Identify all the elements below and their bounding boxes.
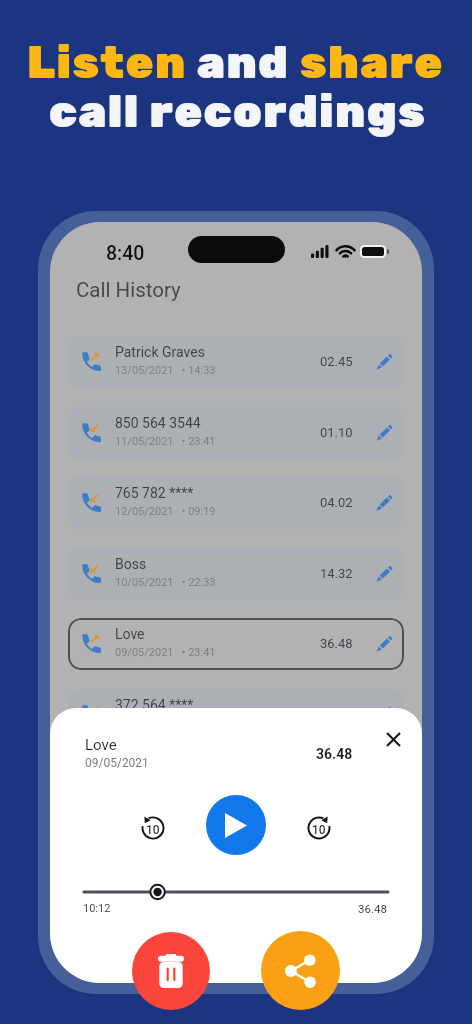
staticText: 10:12 xyxy=(83,902,111,915)
staticText: 11/05/2021 • 23:41 xyxy=(115,435,216,448)
staticText: call recordings xyxy=(49,85,427,138)
button[interactable]: 372 564 **** xyxy=(68,689,404,741)
button[interactable]: 765 782 **** xyxy=(68,477,404,529)
button[interactable]: 850 564 3544 xyxy=(68,407,404,459)
staticText: 8:40 xyxy=(106,242,145,265)
staticText: 09/05/2021 • 23:41 xyxy=(115,646,216,659)
staticText: 12/05/2021 • 09:19 xyxy=(115,505,216,518)
button[interactable]: Boss xyxy=(68,548,404,600)
button[interactable]: Share xyxy=(261,931,340,1010)
staticText: 36.48 xyxy=(320,636,353,651)
staticText: 14.32 xyxy=(320,566,353,581)
staticText: 765 782 **** xyxy=(115,485,194,501)
button[interactable]: Love xyxy=(68,618,404,670)
button[interactable]: Delete xyxy=(132,932,210,1010)
button[interactable]: Close xyxy=(371,717,415,761)
staticText: 372 564 **** xyxy=(115,697,194,713)
staticText: 10 xyxy=(146,823,160,837)
staticText: Love xyxy=(115,626,145,642)
staticText: 01.10 xyxy=(320,425,353,440)
staticText: 13/05/2021 • 14:33 xyxy=(115,364,216,377)
staticText: Love xyxy=(85,736,117,754)
button[interactable]: Rewind 10 seconds xyxy=(141,816,165,840)
staticText: 09/05/2021 xyxy=(85,756,149,770)
button[interactable]: Forward 10 seconds xyxy=(307,816,331,840)
staticText: Boss xyxy=(115,556,147,572)
staticText: share xyxy=(300,36,444,89)
staticText: Patrick Graves xyxy=(115,344,205,360)
button[interactable]: Play xyxy=(206,795,266,855)
staticText: Listen xyxy=(27,36,197,89)
staticText: 04.02 xyxy=(320,495,353,510)
staticText: Call History xyxy=(76,278,181,302)
staticText: 02.12 xyxy=(320,707,353,722)
staticText: 36.48 xyxy=(316,746,353,762)
staticText: 02.45 xyxy=(320,354,353,369)
staticText: 10/05/2021 • 22:33 xyxy=(115,576,216,589)
button[interactable]: Patrick Graves xyxy=(68,336,404,388)
staticText: and xyxy=(197,36,300,89)
staticText: 850 564 3544 xyxy=(115,415,201,431)
staticText: 10 xyxy=(312,823,326,837)
staticText: 36.48 xyxy=(358,902,387,915)
